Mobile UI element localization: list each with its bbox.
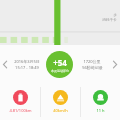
staticText: 消耗千卡 [102, 18, 117, 23]
staticText: +54 [53, 57, 67, 68]
other: Duration [93, 90, 108, 105]
staticText: 本次运动评分 [51, 69, 69, 73]
staticText: 1720公里 [83, 59, 101, 64]
button[interactable]: 步 [0, 0, 120, 45]
staticText: 2016年3月5日 [14, 59, 40, 64]
button[interactable]: 1720公里 [74, 59, 110, 70]
staticText: 15:17 - 18:49 [15, 65, 39, 70]
staticText: 4.81/100km [9, 108, 32, 113]
staticText: 40km/h [53, 108, 68, 113]
button[interactable]: Previous [0, 45, 9, 84]
button[interactable]: +54 [46, 51, 73, 78]
other: Altitude [53, 90, 68, 105]
staticText: 步 [113, 13, 117, 17]
staticText: 56秒前记录 [82, 65, 103, 70]
button[interactable]: Duration [81, 84, 120, 120]
button[interactable]: Pace [0, 84, 40, 120]
button[interactable]: Next [110, 45, 120, 84]
staticText: 11 h [96, 108, 105, 113]
button[interactable]: 2016年3月5日 [9, 59, 45, 70]
other: Pace [13, 90, 28, 105]
button[interactable]: Altitude [41, 84, 80, 120]
